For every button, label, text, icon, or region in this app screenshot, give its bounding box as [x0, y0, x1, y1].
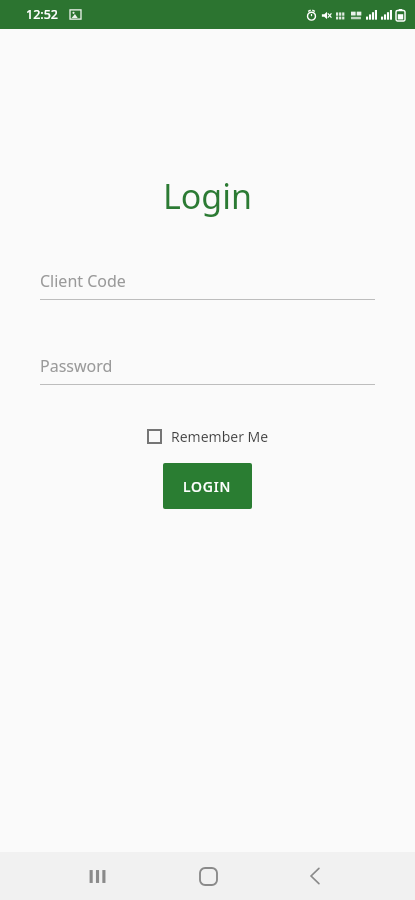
staticText: Login — [0, 173, 415, 219]
staticText: Client Code — [40, 270, 126, 292]
button[interactable]: Recent apps — [78, 856, 118, 896]
button[interactable]: LOGIN — [163, 463, 252, 509]
button[interactable]: Password — [40, 355, 375, 385]
button[interactable]: Back — [295, 856, 335, 896]
button[interactable]: Home — [188, 856, 228, 896]
staticText: LOGIN — [183, 477, 232, 496]
staticText: 12:52 — [26, 6, 59, 23]
button[interactable]: Remember Me — [145, 423, 271, 450]
staticText: Remember Me — [171, 427, 269, 446]
staticText: Password — [40, 355, 113, 377]
button[interactable]: Client Code — [40, 270, 375, 300]
